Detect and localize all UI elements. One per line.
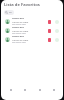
button[interactable]: More bbox=[55, 29, 59, 33]
staticText: COMPLETO bbox=[12, 35, 24, 38]
other: Search bbox=[5, 11, 8, 14]
staticText: Sub titulo aqui bbox=[12, 23, 26, 26]
staticText: Nome do Item bbox=[12, 20, 29, 23]
button[interactable]: Search bbox=[4, 10, 14, 15]
staticText: Buscar bbox=[9, 10, 13, 15]
button[interactable]: Tab 2 bbox=[35, 85, 44, 94]
button[interactable]: Tab 0 bbox=[6, 85, 15, 94]
staticText: COMPLETO bbox=[12, 17, 24, 20]
staticText: Lista de Favoritos bbox=[4, 2, 40, 8]
button[interactable]: Favorite bbox=[48, 29, 51, 33]
button[interactable]: More bbox=[55, 38, 59, 42]
button[interactable]: COMPLETO bbox=[1, 35, 63, 44]
staticText: COMPLETO bbox=[12, 26, 24, 29]
button[interactable]: Tab 3 bbox=[49, 85, 58, 94]
button[interactable]: More bbox=[55, 20, 59, 24]
button[interactable]: Favorite bbox=[48, 38, 51, 42]
staticText: Nome do Item bbox=[12, 29, 29, 32]
staticText: Nome do Item bbox=[12, 38, 29, 41]
button[interactable]: Tab 1 bbox=[20, 85, 29, 94]
staticText: Sub titulo aqui bbox=[12, 41, 26, 44]
staticText: Sub titulo aqui bbox=[12, 32, 26, 35]
button[interactable]: COMPLETO bbox=[1, 26, 63, 35]
button[interactable]: COMPLETO bbox=[1, 17, 63, 26]
button[interactable]: Favorite bbox=[48, 20, 51, 24]
